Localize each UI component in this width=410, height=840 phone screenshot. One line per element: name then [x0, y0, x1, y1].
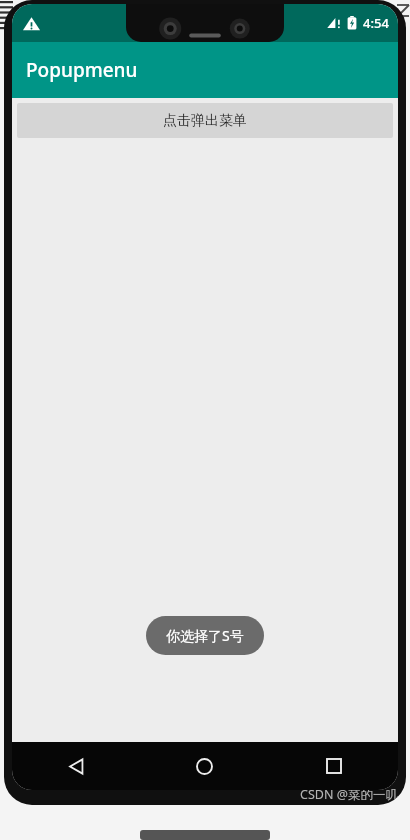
other: Warning [22, 14, 41, 33]
button[interactable]: 点击弹出菜单 [17, 103, 393, 138]
staticText: CSDN @菜的一叽 [300, 786, 398, 803]
button[interactable]: Back [12, 742, 140, 790]
button[interactable]: Recent apps [269, 742, 398, 790]
staticText: 点击弹出菜单 [163, 112, 247, 130]
staticText: 你选择了S号 [166, 626, 244, 645]
button[interactable]: Home [140, 742, 269, 790]
staticText: 4:54 [363, 14, 389, 32]
staticText: Popupmenu [26, 57, 138, 83]
